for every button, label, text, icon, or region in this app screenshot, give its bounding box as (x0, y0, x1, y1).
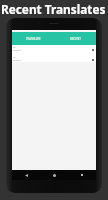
staticText: TRANSLATE (26, 37, 41, 41)
staticText: Bonjour (13, 59, 22, 62)
button[interactable]: Recent apps (68, 170, 96, 180)
button[interactable]: Hi (12, 45, 96, 53)
button[interactable]: TRANSLATE (12, 32, 54, 45)
button[interactable]: Hi (12, 55, 96, 63)
staticText: Bonjour (13, 49, 22, 52)
button[interactable]: Back (12, 170, 40, 180)
button[interactable]: More options (91, 58, 95, 62)
button[interactable]: More options (91, 48, 95, 52)
staticText: Hi (13, 45, 16, 48)
button[interactable]: RECENT (54, 32, 96, 45)
staticText: Hi (13, 55, 16, 58)
button[interactable]: Home (40, 170, 68, 180)
staticText: RECENT (70, 37, 81, 41)
staticText: Recent Translates (1, 1, 106, 17)
